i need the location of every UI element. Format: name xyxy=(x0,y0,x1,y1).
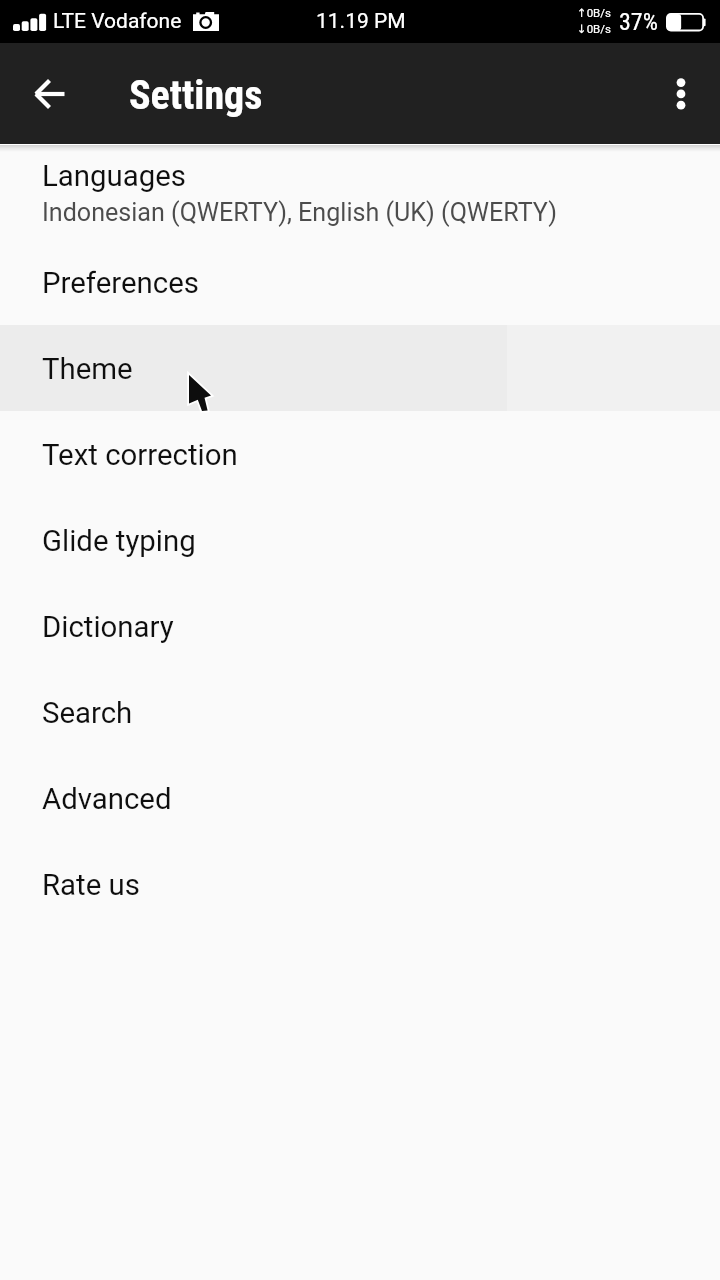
button[interactable]: Theme xyxy=(0,325,720,411)
staticText: Glide typing xyxy=(42,524,196,558)
button[interactable]: Preferences xyxy=(0,239,720,325)
staticText: ↑0B/s xyxy=(577,6,611,19)
button[interactable]: Glide typing xyxy=(0,497,720,583)
staticText: Search xyxy=(42,696,133,730)
button[interactable]: Text correction xyxy=(0,411,720,497)
staticText: Rate us xyxy=(42,868,140,902)
staticText: 11.19 PM xyxy=(316,9,406,34)
staticText: Text correction xyxy=(42,438,238,472)
button[interactable]: Rate us xyxy=(0,841,720,927)
button[interactable]: Languages xyxy=(0,145,720,239)
staticText: Languages xyxy=(42,159,186,193)
button[interactable]: Navigate up xyxy=(19,63,81,125)
staticText: Indonesian (QWERTY), English (UK) (QWERT… xyxy=(42,198,557,227)
staticText: Theme xyxy=(42,352,133,386)
staticText: LTE Vodafone xyxy=(53,9,182,34)
staticText: ↓0B/s xyxy=(577,22,611,35)
staticText: Settings xyxy=(129,72,263,119)
button[interactable]: Search xyxy=(0,669,720,755)
staticText: 37% xyxy=(619,8,658,36)
staticText: Dictionary xyxy=(42,610,174,644)
button[interactable]: Advanced xyxy=(0,755,720,841)
staticText: Preferences xyxy=(42,266,199,300)
button[interactable]: Dictionary xyxy=(0,583,720,669)
staticText: Advanced xyxy=(42,782,172,816)
button[interactable]: More options xyxy=(652,65,710,123)
